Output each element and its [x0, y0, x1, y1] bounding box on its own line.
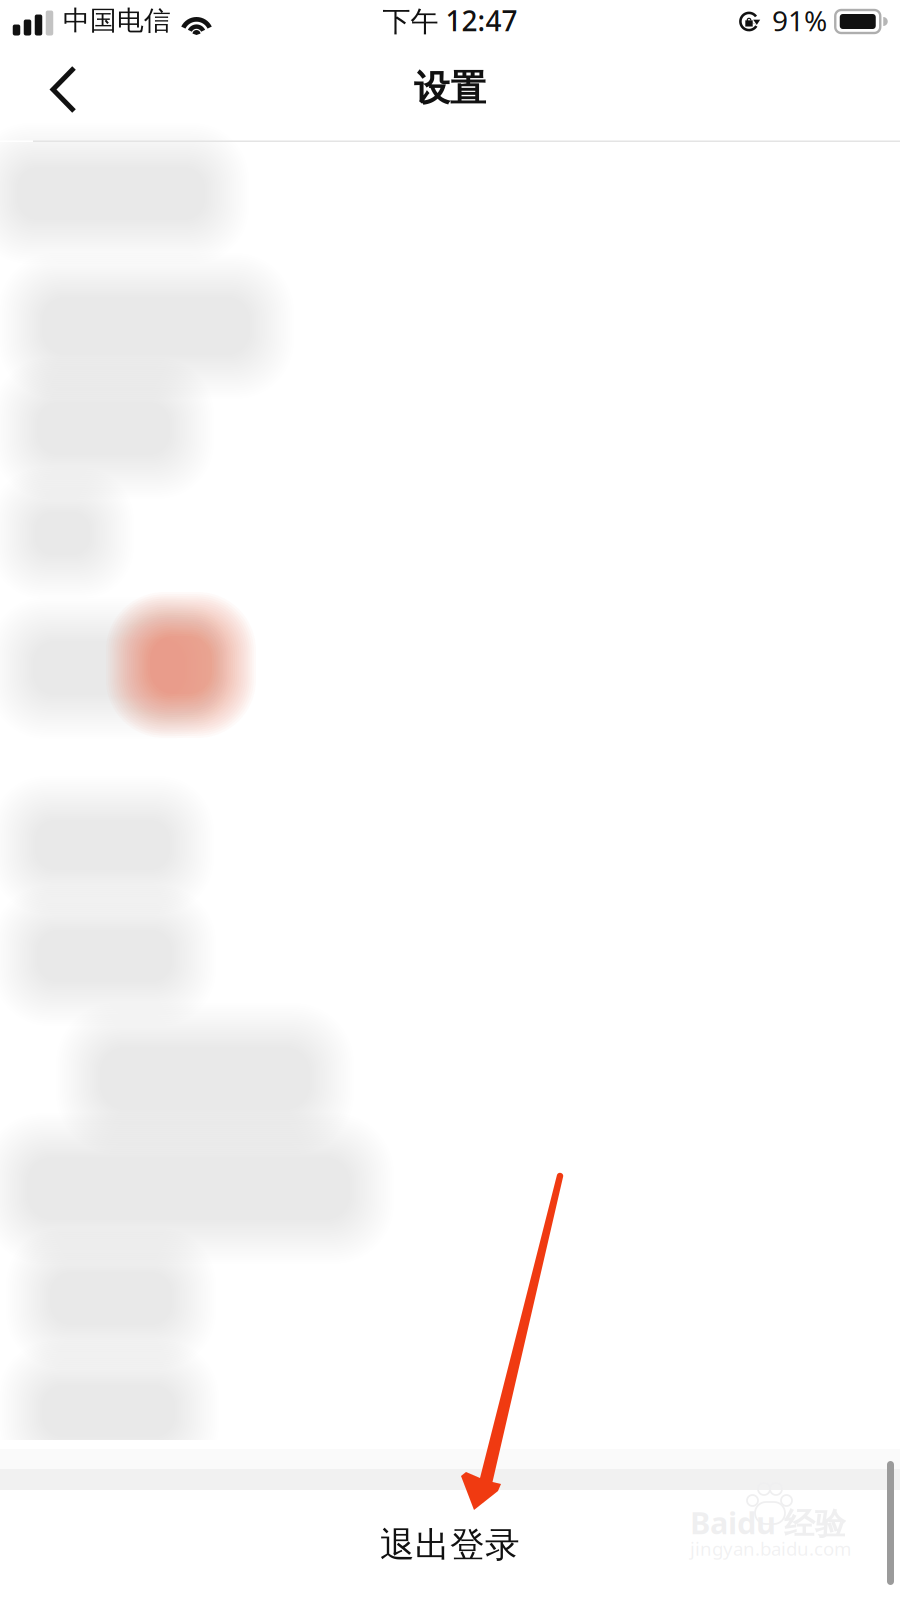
staticText: 下午 12:47	[382, 2, 517, 39]
staticText: 91%	[772, 2, 827, 39]
button[interactable]: Back	[0, 49, 114, 136]
staticText: 设置	[414, 66, 486, 111]
staticText: jingyan.baidu.com	[690, 1536, 851, 1561]
button[interactable]: 退出登录	[0, 1490, 900, 1600]
staticText: Baidu 经验	[690, 1502, 846, 1543]
staticText: 中国电信	[63, 4, 171, 37]
staticText: 退出登录	[380, 1524, 520, 1566]
